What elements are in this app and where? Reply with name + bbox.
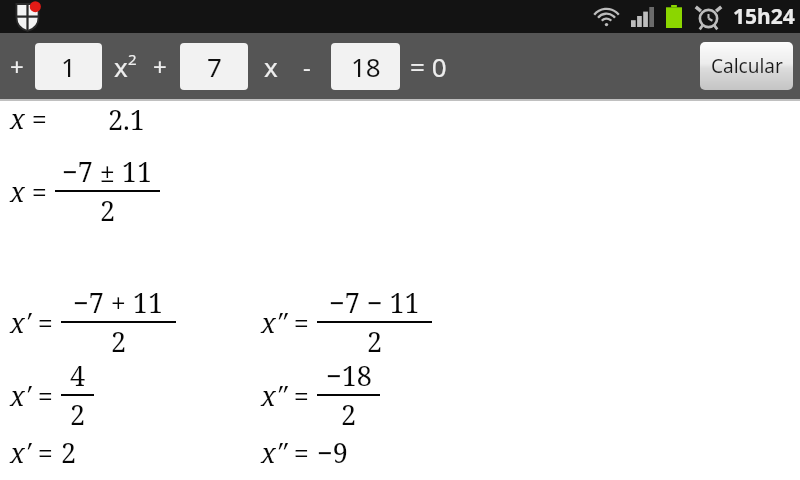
staticText: −7 ± 11 (62, 153, 153, 190)
staticText: x = (10, 100, 47, 137)
button[interactable]: Calcular (700, 42, 793, 90)
other: Mobile signal (631, 7, 654, 27)
button[interactable]: 7 (180, 43, 248, 90)
staticText: = 0 (410, 49, 447, 84)
staticText: 2 (128, 49, 137, 69)
staticText: −18 (326, 357, 372, 394)
staticText: 2 (341, 396, 357, 433)
staticText: Calcular (711, 53, 783, 79)
staticText: x″ = (261, 434, 309, 471)
staticText: −7 + 11 (73, 284, 164, 321)
staticText: x″ = (261, 377, 309, 414)
staticText: x′ = (10, 434, 53, 471)
staticText: 18 (351, 49, 381, 84)
other: Security notification (14, 1, 41, 31)
staticText: x (114, 49, 128, 84)
staticText: x″ = (261, 304, 309, 341)
staticText: x (264, 49, 278, 84)
staticText: −9 (317, 434, 348, 471)
staticText: 2.1 (108, 101, 145, 138)
other: Wi-Fi (594, 7, 619, 27)
staticText: 2 (100, 192, 116, 229)
staticText: 2 (70, 396, 86, 433)
staticText: x = (10, 173, 47, 210)
staticText: 15h24 (733, 2, 795, 31)
button[interactable]: 1 (35, 43, 102, 90)
button[interactable]: 18 (331, 43, 400, 90)
staticText: 2 (111, 323, 127, 360)
staticText: 4 (70, 357, 86, 394)
staticText: + (153, 50, 167, 83)
staticText: 7 (207, 49, 222, 84)
other: Battery (666, 5, 682, 28)
staticText: −7 − 11 (329, 284, 420, 321)
staticText: 1 (61, 49, 76, 84)
other: Alarm set (696, 4, 721, 29)
staticText: 2 (367, 323, 383, 360)
staticText: - (303, 50, 311, 83)
staticText: x′ = (10, 304, 53, 341)
staticText: 2 (61, 434, 77, 471)
staticText: x′ = (10, 377, 53, 414)
staticText: + (10, 50, 24, 83)
